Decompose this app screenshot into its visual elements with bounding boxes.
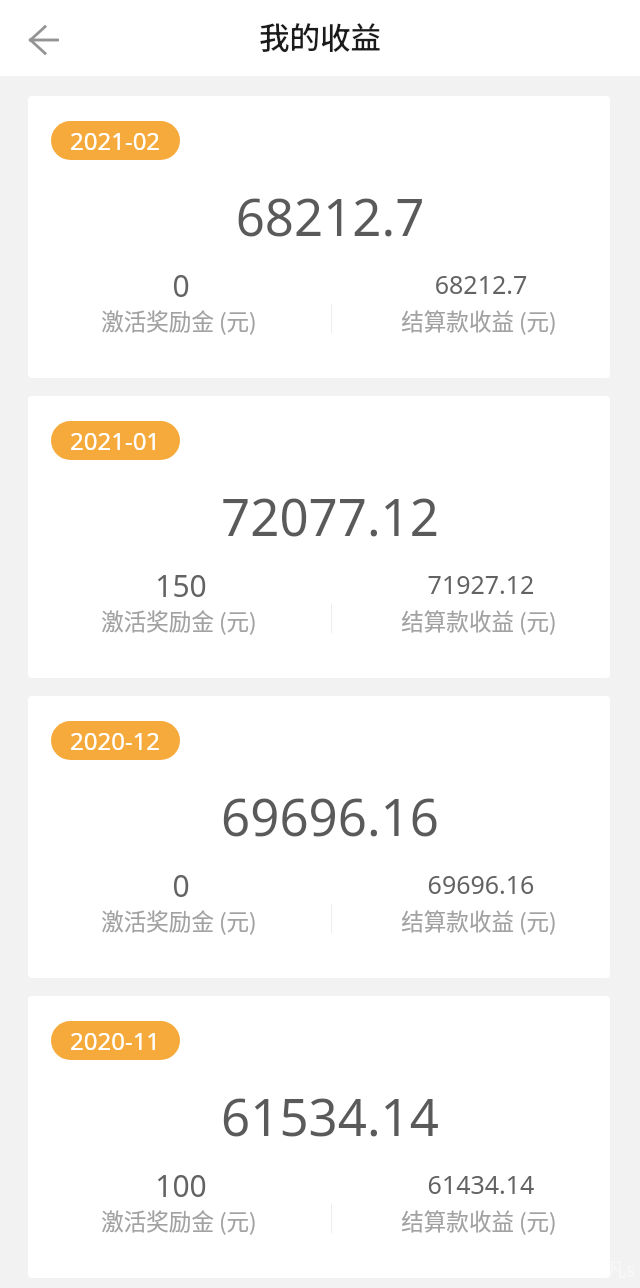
staticText: 我的收益: [259, 14, 381, 58]
staticText: 结算款收益 (元): [319, 1204, 610, 1237]
staticText: 68212.7: [170, 181, 490, 250]
button[interactable]: 2021-02: [28, 96, 610, 378]
button[interactable]: Back: [12, 7, 76, 73]
staticText: 68212.7: [321, 267, 610, 301]
staticText: 0: [28, 265, 341, 306]
staticText: 2020-12: [70, 724, 161, 757]
staticText: 100: [28, 1165, 341, 1206]
staticText: 激活奖励金 (元): [28, 904, 339, 937]
staticText: 2021-02: [70, 124, 161, 157]
staticText: 2021-01: [70, 424, 161, 457]
button[interactable]: 2020-12: [28, 696, 610, 978]
staticText: 结算款收益 (元): [319, 904, 610, 937]
button[interactable]: 2021-01: [28, 396, 610, 678]
staticText: 69696.16: [321, 867, 610, 901]
staticText: 凡s: [607, 1255, 635, 1283]
staticText: 61534.14: [170, 1081, 490, 1150]
staticText: 61434.14: [321, 1167, 610, 1201]
staticText: 0: [28, 865, 341, 906]
staticText: 激活奖励金 (元): [28, 604, 339, 637]
staticText: 69696.16: [170, 781, 490, 850]
staticText: 2020-11: [70, 1024, 161, 1057]
staticText: 71927.12: [321, 567, 610, 601]
staticText: 结算款收益 (元): [319, 604, 610, 637]
staticText: 激活奖励金 (元): [28, 304, 339, 337]
staticText: 150: [28, 565, 341, 606]
staticText: 激活奖励金 (元): [28, 1204, 339, 1237]
staticText: 结算款收益 (元): [319, 304, 610, 337]
button[interactable]: 2020-11: [28, 996, 610, 1278]
staticText: 72077.12: [170, 481, 490, 550]
